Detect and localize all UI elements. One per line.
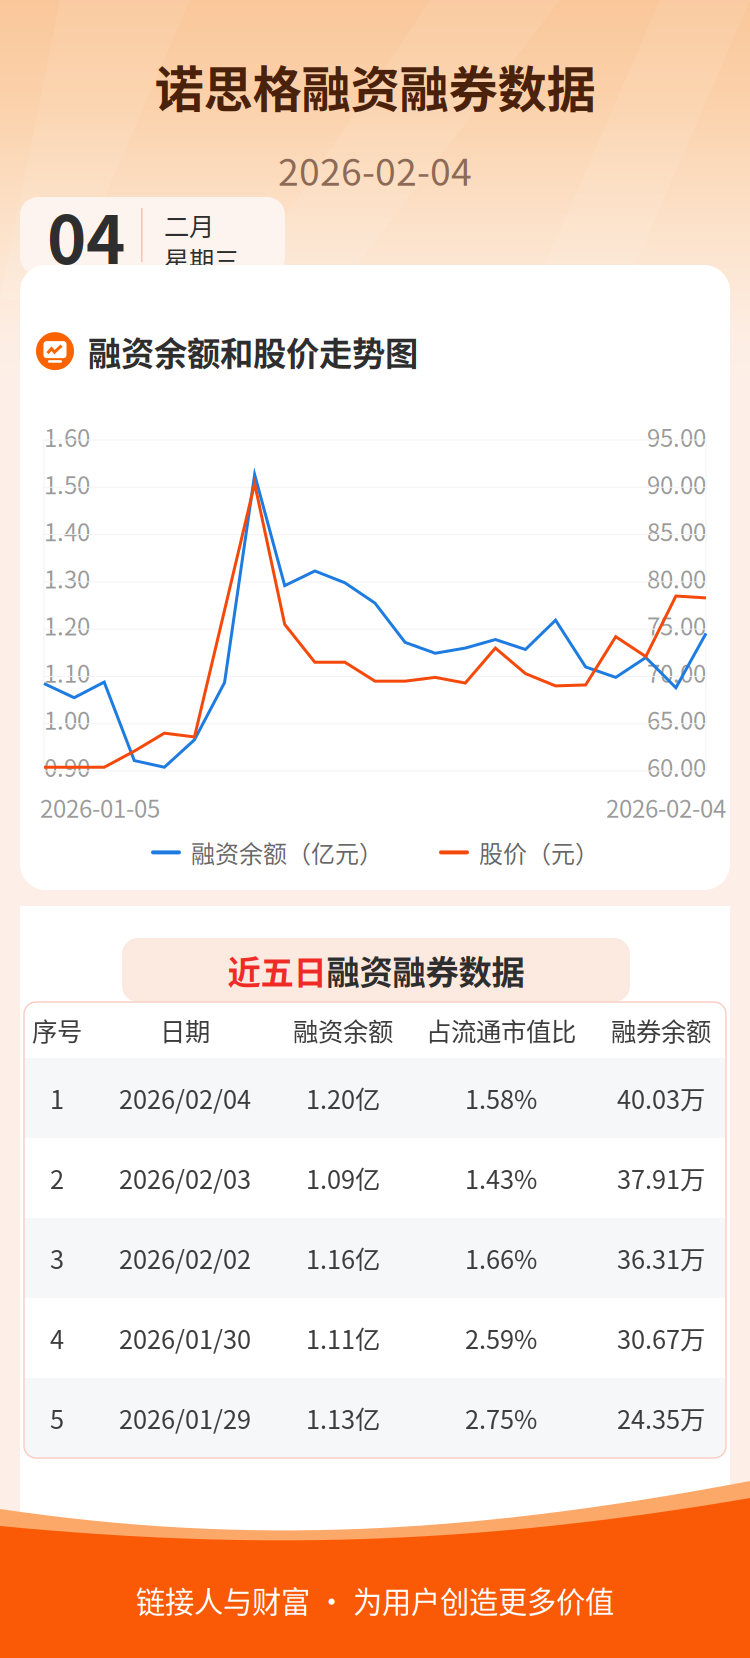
staticText: 2026/02/03	[119, 1160, 251, 1196]
staticText: 80.00	[647, 561, 706, 595]
staticText: 2026/02/04	[119, 1080, 251, 1116]
staticText: 2.75%	[465, 1400, 537, 1436]
staticText: 链接人与财富 · 为用户创造更多价值	[136, 1579, 614, 1621]
staticText: 1.58%	[465, 1080, 537, 1116]
staticText: 5	[50, 1400, 64, 1436]
staticText: 1.30	[44, 561, 90, 595]
staticText: 股价（元）	[479, 835, 599, 870]
staticText: 0.90	[44, 749, 90, 784]
staticText: 2026/02/02	[119, 1240, 251, 1276]
staticText: 2026-01-05	[40, 790, 160, 825]
staticText: 85.00	[647, 513, 706, 548]
staticText: 1.10	[44, 655, 90, 690]
staticText: 日期	[160, 1012, 210, 1048]
staticText: 70.00	[647, 655, 706, 690]
staticText: 星期三	[164, 241, 239, 277]
staticText: 30.67万	[617, 1320, 705, 1356]
staticText: 1.16亿	[306, 1240, 380, 1276]
staticText: 1.20	[44, 608, 90, 643]
staticText: 1.50	[44, 466, 90, 501]
staticText: 融券余额	[611, 1012, 711, 1048]
staticText: 融资余额和股价走势图	[88, 327, 418, 375]
staticText: 1.60	[44, 419, 90, 454]
staticText: 24.35万	[617, 1400, 705, 1436]
staticText: 2.59%	[465, 1320, 537, 1356]
staticText: 融资余额	[293, 1012, 393, 1048]
staticText: 融资融券数据	[326, 946, 524, 994]
staticText: 4	[50, 1320, 64, 1356]
staticText: 序号	[32, 1012, 82, 1048]
staticText: 04	[47, 187, 125, 283]
staticText: 二月	[164, 207, 214, 243]
staticText: 占流通市值比	[426, 1012, 576, 1048]
staticText: 36.31万	[617, 1240, 705, 1276]
staticText: 2026-02-04	[606, 790, 726, 825]
staticText: 1.66%	[465, 1240, 537, 1276]
staticText: 95.00	[647, 419, 706, 454]
staticText: 1.09亿	[306, 1160, 380, 1196]
staticText: 近五日	[227, 946, 326, 994]
staticText: 40.03万	[617, 1080, 705, 1116]
staticText: 融资余额（亿元）	[191, 835, 383, 870]
staticText: 1.13亿	[306, 1400, 380, 1436]
staticText: 诺思格融资融券数据	[154, 50, 595, 121]
staticText: 1	[50, 1080, 64, 1116]
staticText: 2026/01/29	[119, 1400, 251, 1436]
staticText: 2026-02-04	[278, 142, 472, 196]
staticText: 60.00	[647, 749, 706, 784]
staticText: 2026/01/30	[119, 1320, 251, 1356]
staticText: 1.20亿	[306, 1080, 380, 1116]
staticText: 1.40	[44, 513, 90, 548]
staticText: 3	[50, 1240, 64, 1276]
staticText: 65.00	[647, 702, 706, 737]
staticText: 90.00	[647, 466, 706, 501]
staticText: 2	[50, 1160, 64, 1196]
staticText: 37.91万	[617, 1160, 705, 1196]
staticText: 75.00	[647, 608, 706, 643]
staticText: 1.43%	[465, 1160, 537, 1196]
staticText: 1.11亿	[306, 1320, 380, 1356]
staticText: 1.00	[44, 702, 90, 737]
